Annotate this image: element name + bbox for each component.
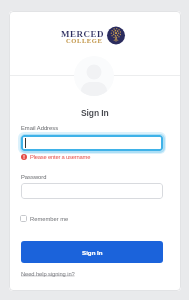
staticText: Please enter a username: [30, 154, 91, 160]
staticText: COLLEGE: [66, 37, 103, 44]
button[interactable]: [21, 183, 163, 199]
staticText: MERCED: [61, 29, 104, 39]
staticText: Sign In: [82, 249, 103, 256]
staticText: Email Address: [21, 125, 59, 131]
staticText: Sign In: [81, 108, 109, 117]
staticText: Password: [21, 174, 47, 180]
button[interactable]: Sign In: [21, 241, 163, 263]
button[interactable]: Need help signing in?: [21, 271, 75, 277]
button[interactable]: [21, 135, 163, 151]
button[interactable]: Remember me: [20, 215, 69, 222]
staticText: Remember me: [30, 216, 69, 222]
